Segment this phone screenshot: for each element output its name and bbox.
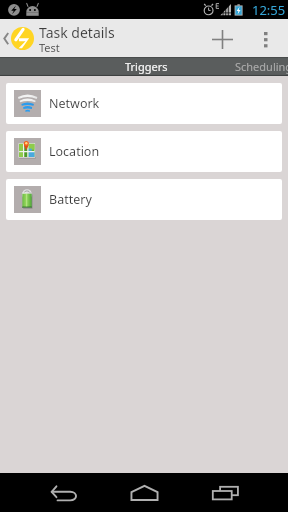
staticText: Network [49, 95, 100, 112]
button[interactable]: Location [6, 131, 282, 172]
button[interactable]: Scheduling [205, 57, 288, 76]
button[interactable]: Network [6, 83, 282, 124]
button[interactable]: Back [24, 473, 104, 512]
staticText: 12:55 [252, 1, 286, 19]
button[interactable]: Home [104, 473, 184, 512]
button[interactable]: Add [200, 19, 245, 57]
button[interactable]: Recent apps [185, 473, 265, 512]
staticText: Triggers [125, 59, 168, 74]
staticText: Test [39, 40, 60, 55]
staticText: Battery [49, 191, 92, 208]
staticText: Scheduling [235, 59, 288, 74]
button[interactable]: Battery [6, 179, 282, 220]
button[interactable]: Task details [0, 19, 115, 57]
staticText: Task details [39, 23, 115, 42]
staticText: Location [49, 143, 100, 160]
button[interactable]: Triggers [88, 57, 205, 76]
button[interactable]: More options [245, 19, 286, 57]
